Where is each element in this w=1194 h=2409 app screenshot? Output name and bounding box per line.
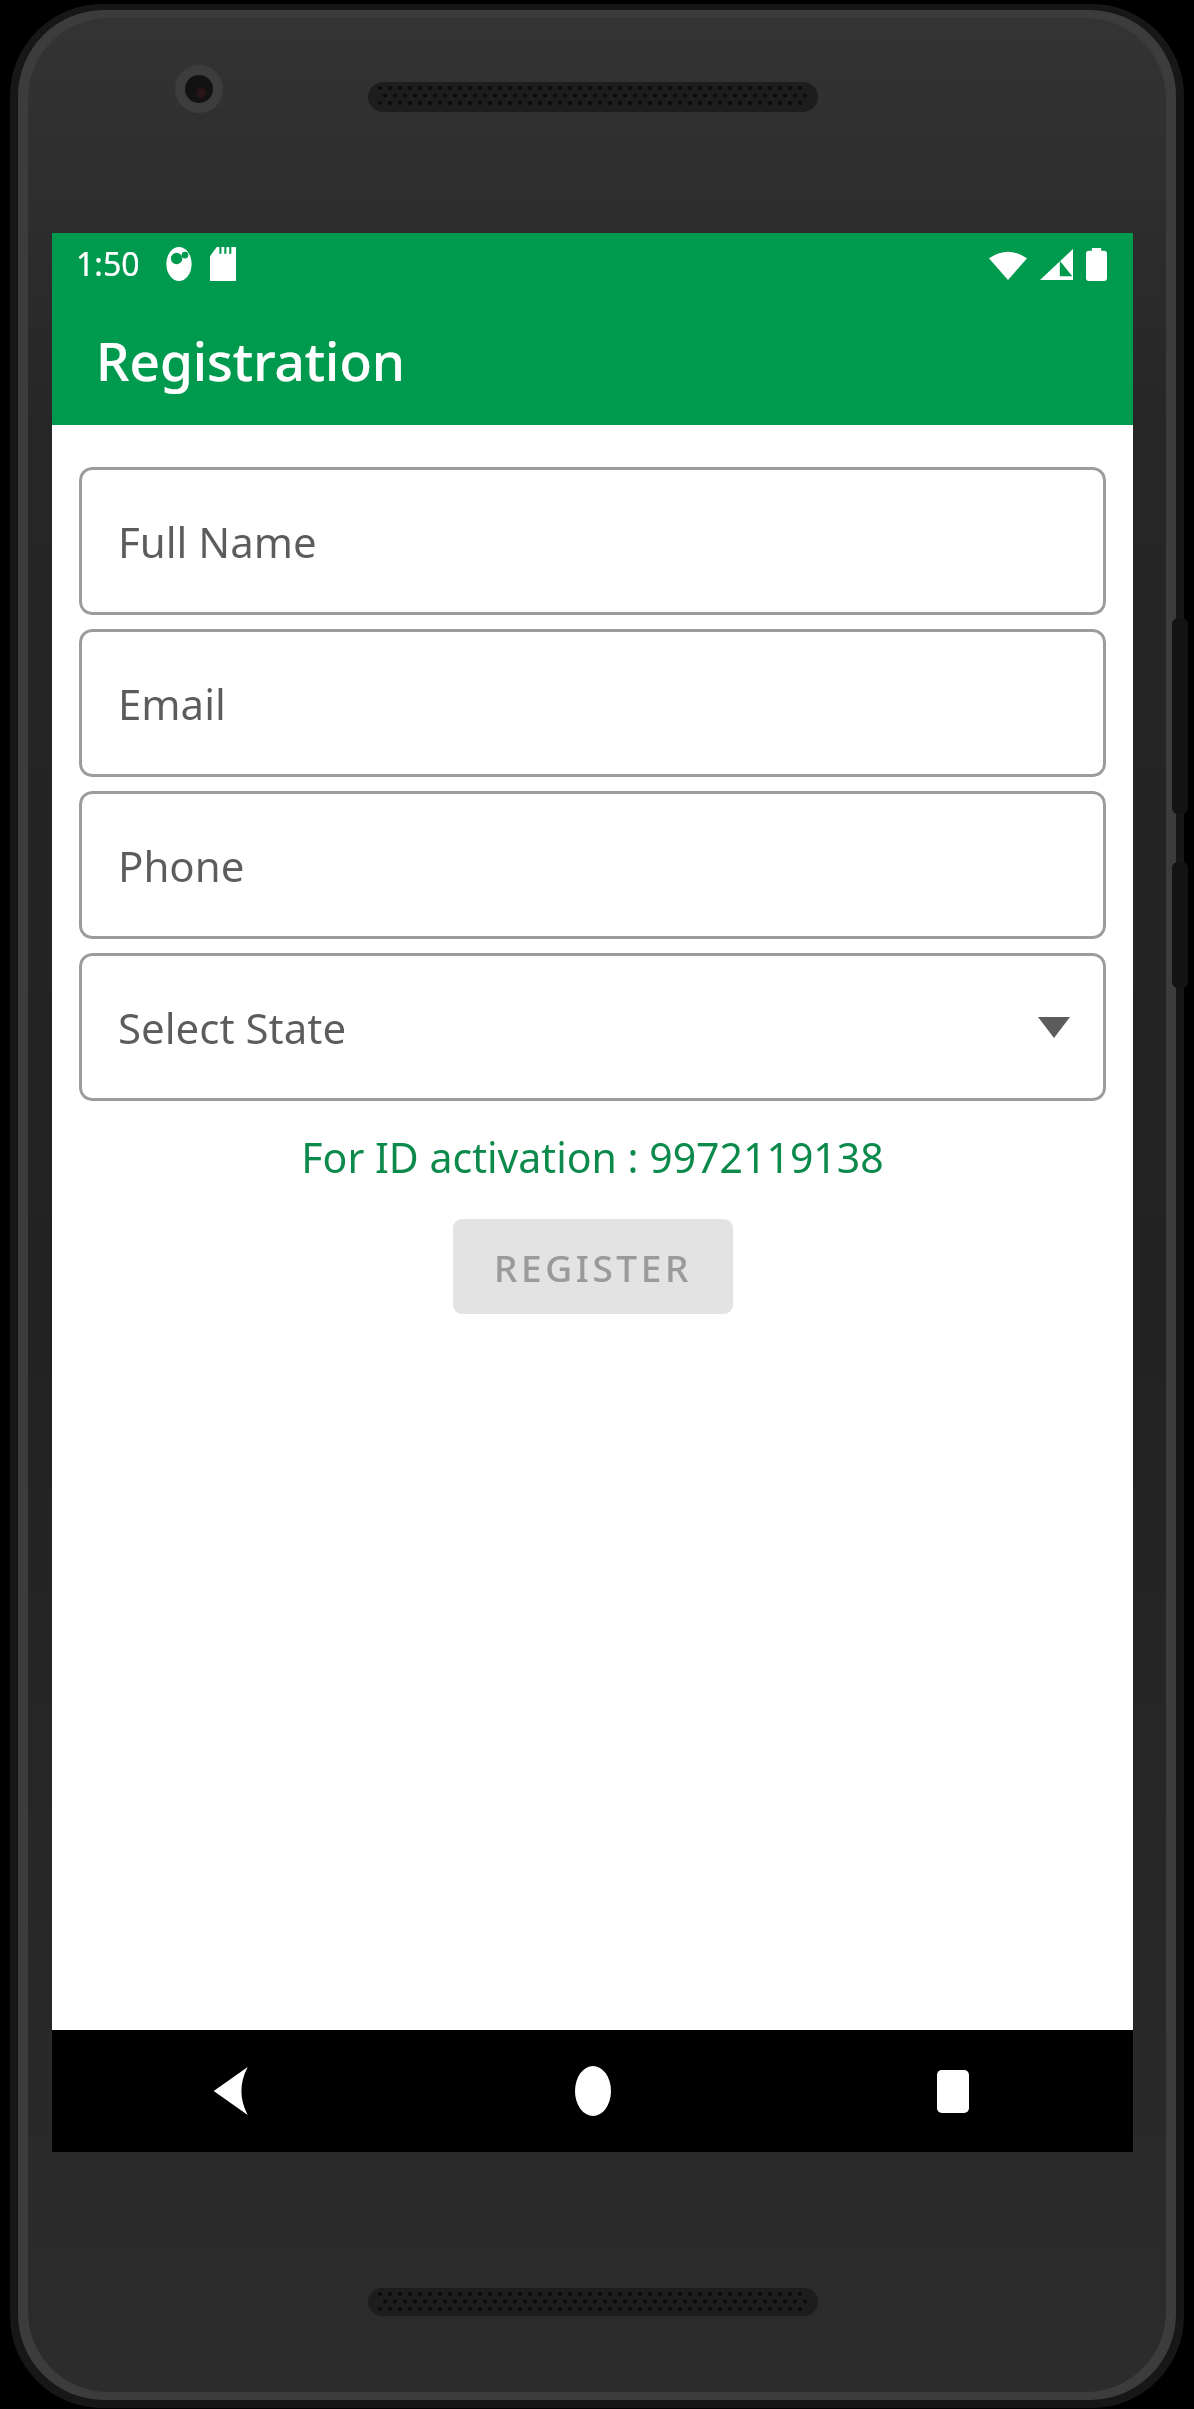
staticText: Registration xyxy=(96,324,406,396)
staticText: REGISTER xyxy=(494,1242,692,1292)
button[interactable]: Email xyxy=(79,629,1106,777)
staticText: 1:50 xyxy=(76,242,140,286)
staticText: Phone xyxy=(118,837,245,894)
button[interactable]: Select State xyxy=(79,953,1106,1101)
button[interactable]: REGISTER xyxy=(453,1219,733,1314)
staticText: Select State xyxy=(118,999,347,1056)
button[interactable]: Phone xyxy=(79,791,1106,939)
button[interactable]: Back xyxy=(52,2030,413,2152)
button[interactable]: Home xyxy=(413,2030,773,2152)
button[interactable]: Recent apps xyxy=(773,2030,1133,2152)
button[interactable]: Full Name xyxy=(79,467,1106,615)
staticText: Full Name xyxy=(118,513,317,570)
staticText: Email xyxy=(118,675,226,732)
staticText: For ID activation : 9972119138 xyxy=(301,1129,884,1185)
